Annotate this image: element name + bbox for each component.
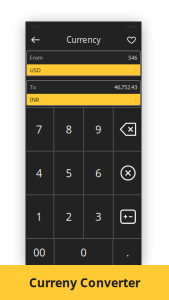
staticText: 4 (36, 166, 42, 180)
staticText: 546 (128, 54, 137, 61)
button[interactable]: 6 (84, 151, 113, 194)
button[interactable]: 8 (54, 108, 83, 151)
staticText: 8 (66, 122, 72, 136)
button[interactable]: Toggle sign (114, 195, 143, 238)
button[interactable]: Add to favourites (124, 33, 139, 47)
staticText: 7 (36, 122, 42, 136)
button[interactable]: 7 (24, 108, 53, 151)
staticText: 0 (80, 245, 86, 259)
staticText: Curreny Converter (29, 274, 140, 290)
staticText: 46,752.43 (114, 84, 137, 91)
staticText: . (126, 245, 129, 259)
button[interactable]: 0 (54, 239, 112, 266)
staticText: Currency (66, 34, 100, 45)
button[interactable]: 5 (54, 151, 83, 194)
staticText: 00 (33, 245, 45, 259)
button[interactable]: 00 (25, 239, 54, 266)
staticText: 5 (66, 166, 72, 180)
staticText: USD (30, 67, 41, 74)
staticText: From (30, 54, 43, 61)
button[interactable]: Back (28, 33, 43, 47)
button[interactable]: . (113, 239, 142, 266)
button[interactable]: 4 (24, 151, 53, 194)
staticText: 9:41 (30, 23, 40, 30)
button[interactable]: 1 (24, 195, 53, 238)
button[interactable]: 2 (54, 195, 83, 238)
button[interactable]: Delete (114, 108, 143, 151)
button[interactable]: INR (27, 94, 140, 105)
staticText: 3 (95, 210, 101, 224)
staticText: INR (30, 96, 39, 103)
staticText: 6 (95, 166, 101, 180)
button[interactable]: USD (27, 64, 140, 76)
staticText: To (30, 84, 36, 91)
button[interactable]: Clear (114, 151, 143, 194)
staticText: 2 (66, 210, 72, 224)
button[interactable]: 9 (84, 108, 113, 151)
button[interactable]: 3 (84, 195, 113, 238)
staticText: 1 (36, 210, 42, 224)
staticText: 9 (95, 122, 101, 136)
